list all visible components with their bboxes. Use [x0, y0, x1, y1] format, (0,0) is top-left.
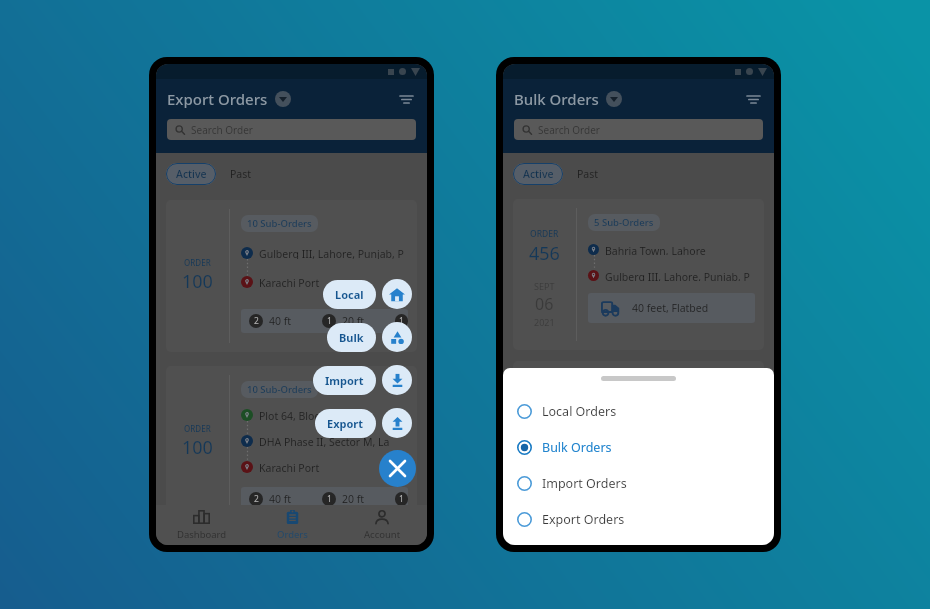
button[interactable]: Filter [741, 87, 765, 111]
staticText: 2 [254, 493, 259, 505]
staticText: 100 [182, 435, 213, 460]
staticText: 10 Sub-Orders [247, 217, 312, 230]
staticText: Plot 64, Block C, Lahore [259, 409, 375, 421]
staticText: 456 [529, 241, 560, 266]
staticText: 1 [327, 315, 332, 327]
staticText: Import Orders [542, 475, 627, 492]
button[interactable]: Local [382, 279, 412, 309]
staticText: 10 Sub-Orders [247, 383, 312, 396]
staticText: Karachi Port [259, 276, 320, 288]
button[interactable]: Active [513, 163, 563, 185]
staticText: SEPT [534, 280, 555, 292]
staticText: Bulk Orders [514, 89, 599, 109]
button[interactable]: Active [166, 163, 216, 185]
staticText: Bulk [339, 330, 364, 345]
staticText: Dashboard [177, 528, 227, 541]
button[interactable]: ORDER [513, 361, 764, 505]
button[interactable]: Orders [594, 505, 684, 545]
staticText: Account [364, 528, 401, 541]
button[interactable]: Search Order [514, 119, 763, 140]
staticText: 1 [327, 493, 332, 505]
button[interactable]: Bulk Orders [503, 429, 774, 465]
button[interactable]: Change order type [275, 91, 291, 107]
button[interactable]: Past [563, 163, 613, 185]
button[interactable]: ORDER [513, 199, 764, 350]
staticText: Bahria Town, Lahore [605, 244, 706, 255]
staticText: 1 [399, 315, 404, 327]
button[interactable]: Close menu [379, 450, 416, 487]
staticText: 5 Sub-Orders [594, 216, 654, 229]
staticText: Bulk Orders [542, 439, 612, 456]
staticText: SEPT [534, 442, 555, 454]
button[interactable]: Export Orders [503, 501, 774, 537]
staticText: Past [577, 167, 599, 181]
button[interactable]: Bulk [327, 323, 376, 352]
button[interactable]: Import [313, 366, 376, 395]
button[interactable]: Local [323, 280, 376, 309]
staticText: Gulberg III, Lahore, Punjab, P [259, 247, 404, 259]
staticText: 40 feet, Flatbed [632, 301, 709, 315]
button[interactable]: Local Orders [503, 393, 774, 429]
staticText: Search Order [191, 123, 253, 137]
button[interactable]: Bulk [382, 322, 412, 352]
staticText: 2021 [534, 478, 555, 490]
staticText: 40 ft [269, 314, 292, 328]
staticText: ORDER [184, 423, 211, 434]
staticText: Search Order [538, 123, 600, 137]
button[interactable]: Account [684, 505, 774, 545]
staticText: 2 [254, 315, 259, 327]
staticText: 100 [182, 269, 213, 294]
staticText: Local [335, 287, 364, 302]
staticText: 1 [399, 493, 404, 505]
staticText: Local Orders [542, 403, 617, 420]
button[interactable]: Import [382, 365, 412, 395]
staticText: 2021 [534, 316, 555, 328]
button[interactable]: ORDER [166, 200, 417, 352]
staticText: ORDER [184, 257, 211, 268]
staticText: Gulberg III, Lahore, Punjab, P [605, 270, 750, 281]
button[interactable]: Export [315, 409, 376, 438]
button[interactable]: Filter [394, 87, 418, 111]
staticText: 40 ft [269, 492, 292, 505]
button[interactable]: Account [337, 505, 427, 545]
staticText: 20 ft [342, 492, 365, 505]
staticText: DHA Phase II, Sector M, La [259, 435, 390, 447]
staticText: 5 Sub-Orders [594, 378, 654, 391]
button[interactable]: ORDER [166, 366, 417, 505]
staticText: Active [176, 167, 207, 181]
staticText: Export Orders [542, 511, 625, 528]
staticText: 457 [529, 403, 560, 428]
staticText: ORDER [530, 228, 559, 240]
button[interactable]: Import Orders [503, 465, 774, 501]
staticText: 20 ft [342, 314, 365, 328]
staticText: Export [327, 416, 364, 431]
button[interactable]: Past [216, 163, 266, 185]
staticText: Past [230, 167, 252, 181]
staticText: Bahria Town, Lahore [605, 406, 706, 417]
staticText: Karachi Port [259, 461, 320, 473]
staticText: 06 [535, 293, 554, 315]
staticText: Active [523, 167, 554, 181]
button[interactable]: Dashboard [156, 505, 247, 545]
staticText: Export Orders [167, 89, 268, 109]
staticText: Import [325, 373, 364, 388]
button[interactable]: Change order type [606, 91, 622, 107]
button[interactable]: Export [382, 408, 412, 438]
button[interactable]: Orders [247, 505, 337, 545]
button[interactable]: Search Order [167, 119, 416, 140]
button[interactable]: Dashboard [503, 505, 594, 545]
staticText: Orders [277, 528, 308, 541]
